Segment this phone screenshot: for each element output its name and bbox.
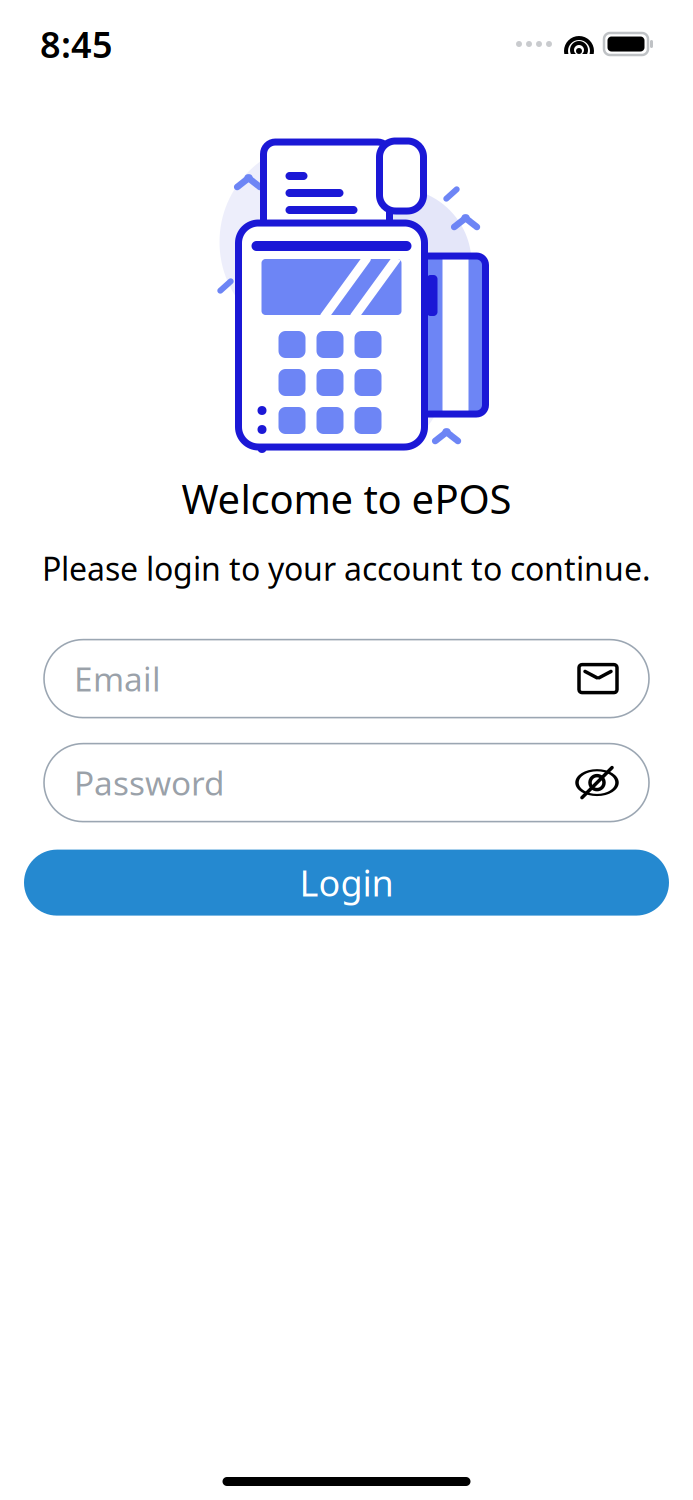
button[interactable]: Password — [44, 744, 649, 822]
staticText: 8:45 — [40, 20, 113, 68]
staticText: Password — [74, 760, 225, 805]
staticText: Welcome to ePOS — [181, 472, 511, 525]
button[interactable]: Login — [24, 850, 669, 916]
staticText: Please login to your account to continue… — [42, 547, 651, 590]
staticText: Login — [299, 859, 393, 906]
staticText: Email — [74, 656, 161, 701]
button[interactable]: Email — [44, 640, 649, 718]
